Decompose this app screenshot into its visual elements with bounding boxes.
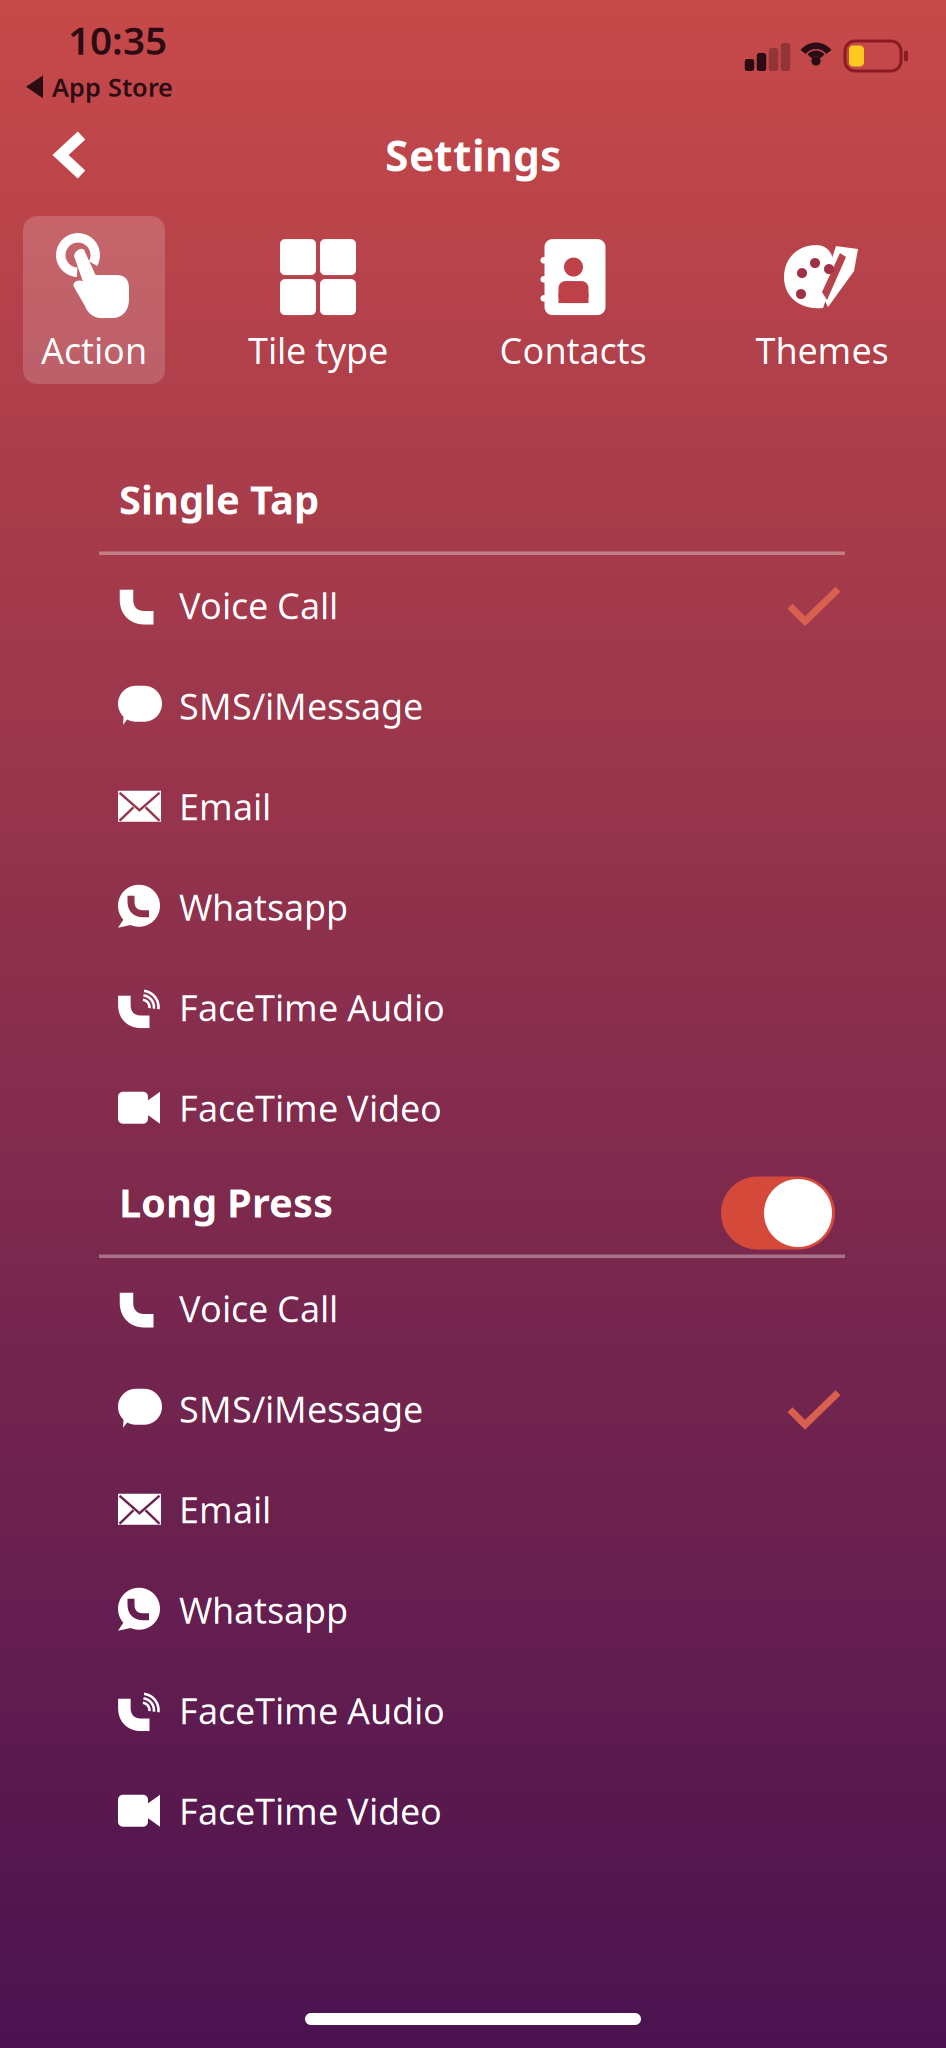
- staticText: Contacts: [499, 326, 646, 374]
- button[interactable]: SMS/iMessage: [0, 655, 946, 756]
- button[interactable]: FaceTime Audio: [0, 1660, 946, 1760]
- button[interactable]: Voice Call: [0, 1258, 946, 1358]
- staticText: App Store: [52, 70, 173, 104]
- staticText: Voice Call: [179, 581, 338, 629]
- button[interactable]: Themes: [751, 216, 893, 384]
- button[interactable]: Action: [23, 216, 165, 384]
- staticText: FaceTime Audio: [179, 1686, 445, 1734]
- button[interactable]: FaceTime Video: [0, 1057, 946, 1158]
- staticText: Voice Call: [179, 1284, 338, 1332]
- staticText: Tile type: [248, 326, 388, 374]
- staticText: Long Press: [119, 1175, 333, 1228]
- button[interactable]: Voice Call: [0, 555, 946, 655]
- staticText: SMS/iMessage: [179, 1385, 423, 1433]
- button[interactable]: FaceTime Audio: [0, 957, 946, 1057]
- button[interactable]: Whatsapp: [0, 1559, 946, 1660]
- button[interactable]: Contacts: [502, 216, 644, 384]
- staticText: 10:35: [68, 14, 167, 65]
- button[interactable]: Tile type: [247, 216, 389, 384]
- button[interactable]: Email: [0, 756, 946, 856]
- button[interactable]: Email: [0, 1459, 946, 1559]
- staticText: Email: [179, 782, 271, 830]
- staticText: Single Tap: [119, 472, 319, 525]
- staticText: FaceTime Video: [179, 1084, 442, 1132]
- button[interactable]: Back: [0, 120, 127, 190]
- button[interactable]: SMS/iMessage: [0, 1358, 946, 1459]
- button[interactable]: FaceTime Video: [0, 1760, 946, 1861]
- staticText: Settings: [385, 127, 561, 183]
- staticText: Email: [179, 1485, 271, 1533]
- staticText: FaceTime Audio: [179, 983, 445, 1031]
- button[interactable]: Whatsapp: [0, 856, 946, 957]
- staticText: Whatsapp: [179, 883, 348, 931]
- staticText: Action: [41, 326, 147, 374]
- staticText: Themes: [755, 326, 888, 374]
- staticText: Whatsapp: [179, 1586, 348, 1634]
- staticText: FaceTime Video: [179, 1787, 442, 1835]
- button[interactable]: Long Press enabled: [721, 1176, 835, 1249]
- staticText: SMS/iMessage: [179, 682, 423, 730]
